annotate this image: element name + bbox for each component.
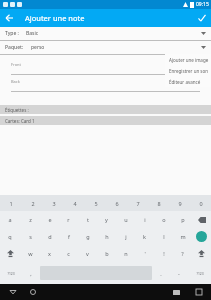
button[interactable]: Éditeur avancé xyxy=(165,76,211,87)
button[interactable]: Supprimer xyxy=(192,211,211,228)
button[interactable]: Enregistrer un son xyxy=(165,65,211,76)
button[interactable]: c xyxy=(59,245,78,262)
button[interactable]: d xyxy=(40,228,59,245)
staticText: c xyxy=(67,250,70,257)
button[interactable]: 5 xyxy=(85,195,106,211)
button[interactable]: Cartes: Card 1 xyxy=(0,116,211,125)
staticText: v xyxy=(86,250,89,257)
button[interactable]: p xyxy=(173,211,192,228)
staticText: x xyxy=(48,250,51,257)
button[interactable]: Retour xyxy=(6,285,20,299)
button[interactable]: 8 xyxy=(148,195,169,211)
button[interactable]: f xyxy=(59,228,78,245)
button[interactable]: o xyxy=(154,211,173,228)
button[interactable]: 3 xyxy=(43,195,64,211)
button[interactable]: Clavier xyxy=(169,285,183,299)
button[interactable]: u xyxy=(116,211,135,228)
button[interactable]: m xyxy=(173,228,192,245)
staticText: Basic xyxy=(26,30,39,37)
button[interactable]: ! xyxy=(154,245,173,262)
staticText: y xyxy=(105,216,108,223)
button[interactable]: n xyxy=(116,245,135,262)
button[interactable]: a xyxy=(0,211,20,228)
button[interactable]: Applications récentes xyxy=(192,285,206,299)
staticText: r xyxy=(67,216,70,223)
staticText: z xyxy=(29,216,32,223)
staticText: ' xyxy=(144,250,146,257)
staticText: Type : xyxy=(5,30,19,37)
button[interactable]: q xyxy=(0,228,20,245)
button[interactable]: Étiquettes : xyxy=(0,105,211,114)
staticText: ?123 xyxy=(196,271,204,275)
staticText: ?123 xyxy=(7,271,15,275)
staticText: o xyxy=(162,216,166,223)
button[interactable]: k xyxy=(135,228,154,245)
button[interactable]: j xyxy=(116,228,135,245)
button[interactable]: y xyxy=(97,211,116,228)
button[interactable]: r xyxy=(59,211,78,228)
button[interactable]: t xyxy=(78,211,97,228)
button[interactable]: z xyxy=(20,211,40,228)
staticText: h xyxy=(105,233,109,240)
staticText: 3 xyxy=(52,200,56,207)
button[interactable]: b xyxy=(97,245,116,262)
button[interactable]: Front xyxy=(11,62,200,79)
staticText: w xyxy=(28,250,33,257)
button[interactable]: e xyxy=(40,211,59,228)
staticText: m xyxy=(180,233,186,240)
staticText: n xyxy=(124,250,128,257)
staticText: f xyxy=(68,233,70,240)
staticText: Enregistrer un son xyxy=(169,68,209,74)
staticText: . xyxy=(160,270,162,277)
staticText: g xyxy=(86,233,90,240)
button[interactable]: i xyxy=(135,211,154,228)
button[interactable]: Majuscule xyxy=(0,245,20,262)
staticText: a xyxy=(8,216,12,223)
button[interactable]: Valider xyxy=(193,9,211,27)
button[interactable]: Accueil xyxy=(26,285,40,299)
staticText: t xyxy=(87,216,89,223)
button[interactable]: w xyxy=(20,245,40,262)
button[interactable]: 0 xyxy=(190,195,211,211)
staticText: Ajouter une note xyxy=(25,13,85,23)
button[interactable]: x xyxy=(40,245,59,262)
button[interactable]: g xyxy=(78,228,97,245)
button[interactable]: Type : xyxy=(0,27,211,41)
staticText: u xyxy=(124,216,128,223)
button[interactable]: 2 xyxy=(22,195,43,211)
button[interactable]: 4 xyxy=(64,195,85,211)
button[interactable]: Majuscule xyxy=(192,245,211,262)
staticText: - xyxy=(178,270,180,277)
staticText: 5 xyxy=(94,200,98,207)
button[interactable]: Ajouter une image xyxy=(165,54,211,65)
staticText: Étiquettes : xyxy=(5,107,29,113)
button[interactable]: v xyxy=(78,245,97,262)
button[interactable]: Paquet: xyxy=(0,41,211,55)
button[interactable]: 1 xyxy=(0,195,22,211)
button[interactable]: Entrée xyxy=(192,228,211,245)
staticText: Front xyxy=(11,62,21,67)
staticText: Back xyxy=(11,79,20,84)
button[interactable]: ?123 xyxy=(188,262,211,284)
button[interactable]: 6 xyxy=(106,195,127,211)
button[interactable]: ?123 xyxy=(0,262,22,284)
button[interactable]: 7 xyxy=(127,195,148,211)
button[interactable]: h xyxy=(97,228,116,245)
button[interactable]: Back xyxy=(11,79,200,96)
button[interactable]: Retour xyxy=(0,9,18,27)
button[interactable]: s xyxy=(20,228,40,245)
staticText: q xyxy=(8,233,12,240)
button[interactable]: ? xyxy=(173,245,192,262)
staticText: Ajouter une image xyxy=(169,57,209,63)
button[interactable]: 9 xyxy=(169,195,190,211)
staticText: p xyxy=(181,216,185,223)
staticText: Paquet: xyxy=(5,44,24,51)
staticText: 0 xyxy=(199,200,203,207)
staticText: l xyxy=(163,233,165,240)
button[interactable]: l xyxy=(154,228,173,245)
